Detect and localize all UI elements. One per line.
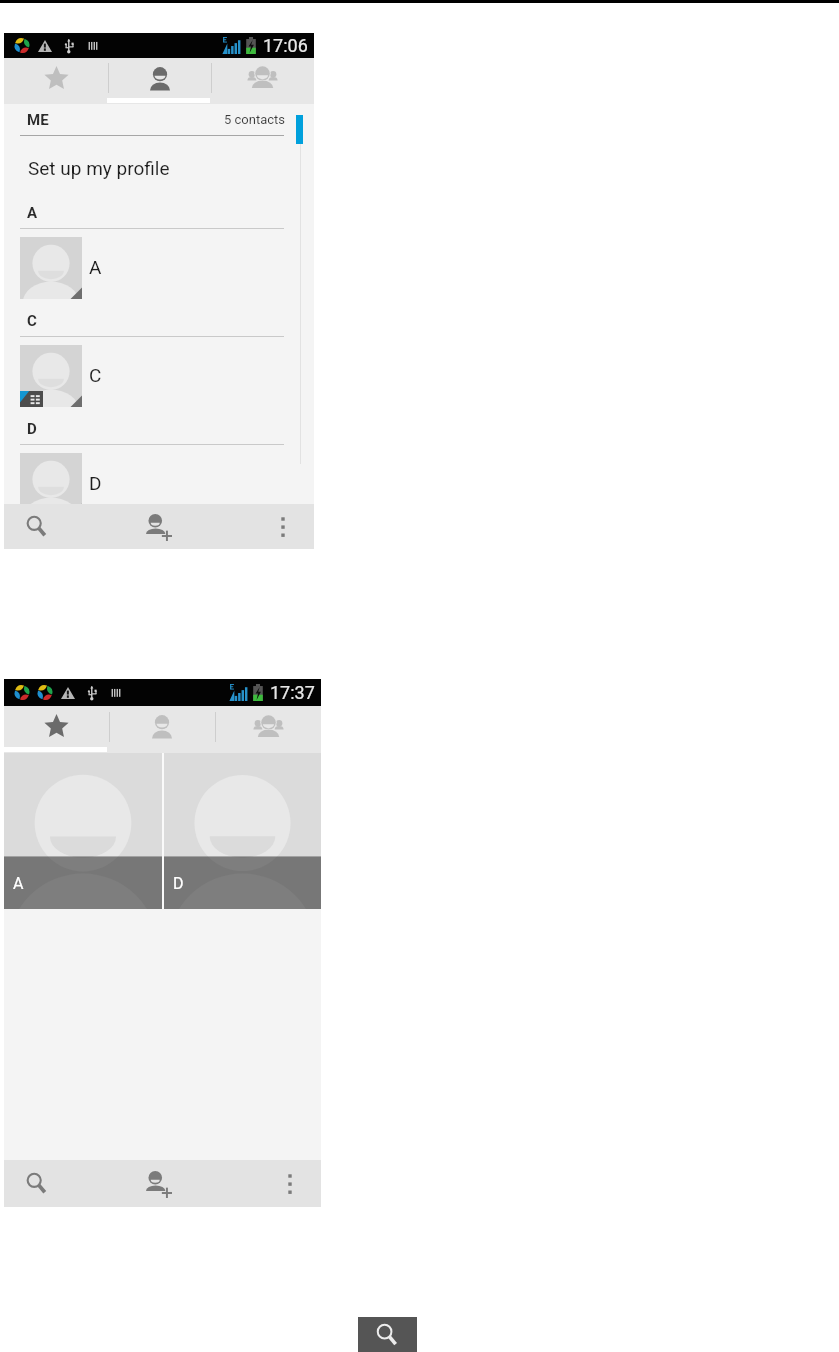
staticText: A (27, 204, 38, 222)
button[interactable]: Contacts (109, 706, 215, 753)
button[interactable]: Search (11, 1160, 61, 1207)
staticText: 17:37 (270, 682, 315, 703)
staticText: D (89, 472, 102, 494)
button[interactable]: A (4, 229, 314, 300)
button[interactable]: Groups (211, 58, 314, 104)
button[interactable]: Search (11, 504, 61, 549)
staticText: C (27, 312, 37, 330)
button[interactable]: Contacts (108, 58, 211, 104)
staticText: A (13, 874, 24, 893)
staticText: ME (27, 111, 49, 129)
button[interactable]: Groups (215, 706, 321, 753)
staticText: Set up my profile (28, 157, 170, 179)
button[interactable]: D (4, 445, 314, 516)
button[interactable]: Add contact (130, 1160, 180, 1207)
button[interactable]: Add contact (130, 504, 180, 549)
staticText: 5 contacts (224, 112, 286, 127)
staticText: A (89, 256, 102, 278)
button[interactable]: Search (358, 1317, 417, 1352)
button[interactable]: More options (269, 1160, 311, 1207)
staticText: D (173, 874, 184, 893)
button[interactable]: More options (262, 504, 304, 549)
button[interactable]: A (4, 753, 162, 909)
staticText: 17:06 (263, 35, 308, 56)
staticText: D (27, 420, 37, 438)
button[interactable]: D (164, 753, 321, 909)
staticText: C (89, 364, 102, 386)
button[interactable]: C (4, 337, 314, 408)
button[interactable]: Set up my profile (4, 143, 314, 192)
button[interactable]: Favorites (4, 706, 109, 753)
button[interactable]: Favorites (4, 58, 108, 104)
